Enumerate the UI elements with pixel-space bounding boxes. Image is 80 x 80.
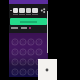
button[interactable]: Item [11, 38, 19, 46]
button[interactable]: Item [19, 68, 27, 76]
button[interactable]: Item [35, 38, 43, 46]
button[interactable]: Item [19, 58, 27, 66]
button[interactable]: Item [35, 48, 43, 56]
button[interactable]: Item [35, 58, 43, 66]
button[interactable]: Item [27, 58, 35, 66]
button[interactable]: Item [27, 68, 35, 76]
button[interactable]: Tool 4 [32, 8, 38, 13]
button[interactable]: Tool 1 [13, 8, 18, 13]
button[interactable]: Item [35, 68, 43, 76]
button[interactable]: Tool 2 [19, 8, 25, 13]
button[interactable]: Item [11, 58, 19, 66]
button[interactable]: Item [11, 68, 19, 76]
button[interactable] [10, 18, 47, 25]
button[interactable]: Item [19, 48, 27, 56]
button[interactable]: Item [27, 38, 35, 46]
button[interactable]: Item [11, 48, 19, 56]
button[interactable]: Tool 3 [26, 8, 31, 13]
button[interactable]: Share [41, 8, 45, 13]
button[interactable]: Item [19, 38, 27, 46]
button[interactable]: Item [27, 48, 35, 56]
